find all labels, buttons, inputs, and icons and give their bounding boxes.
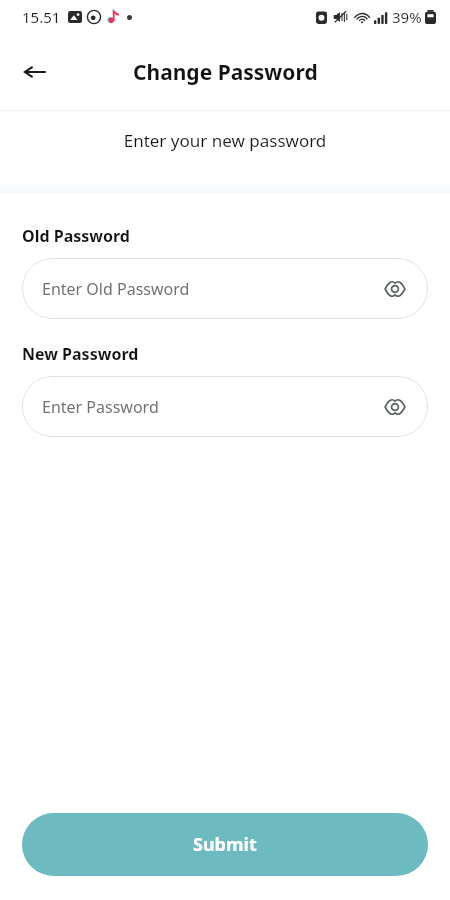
staticText: Submit	[193, 832, 257, 857]
button[interactable]: Enter Old Password	[22, 258, 428, 319]
button[interactable]: Back	[14, 51, 56, 93]
staticText: 15.51	[22, 7, 61, 27]
button[interactable]: Enter Password	[22, 376, 428, 437]
button[interactable]: Show password	[380, 392, 410, 422]
staticText: Change Password	[133, 58, 318, 87]
button[interactable]: Submit	[22, 813, 428, 876]
staticText: New Password	[22, 343, 139, 365]
staticText: 39%	[392, 7, 422, 27]
staticText: Old Password	[22, 225, 130, 247]
staticText: Enter your new password	[0, 129, 450, 152]
staticText: Enter Old Password	[42, 278, 380, 300]
button[interactable]: Show password	[380, 274, 410, 304]
staticText: Enter Password	[42, 396, 380, 418]
